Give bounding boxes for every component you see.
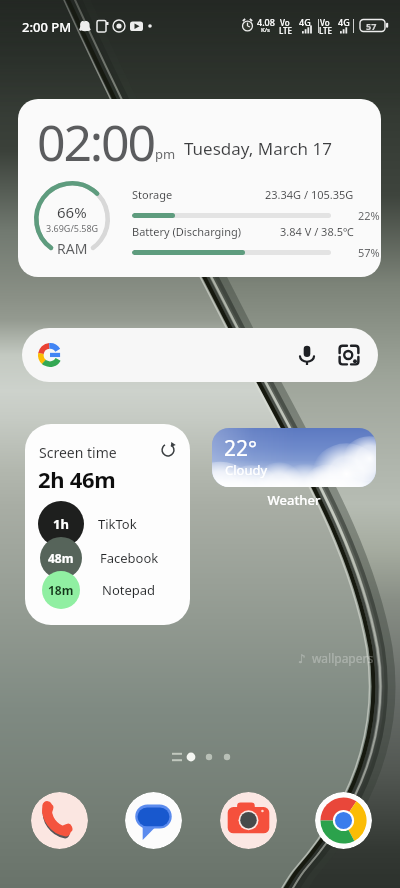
staticText: 4G <box>338 16 350 28</box>
staticText: Tuesday, March 17 <box>184 137 332 160</box>
staticText: 22° <box>224 434 258 463</box>
staticText: LTE <box>319 25 333 36</box>
button[interactable]: 1h <box>38 501 137 547</box>
staticText: 48m <box>48 550 74 566</box>
staticText: 57% <box>358 245 380 260</box>
staticText: Vo <box>280 17 290 28</box>
button[interactable]: 18m <box>42 571 156 609</box>
button[interactable]: 22° <box>212 428 376 487</box>
staticText: Battery (Discharging) <box>132 224 242 239</box>
staticText: Weather <box>212 491 376 509</box>
staticText: RAM <box>57 239 88 257</box>
button[interactable]: Phone <box>31 792 88 849</box>
staticText: K/s <box>261 26 271 34</box>
staticText: 57 <box>366 20 377 32</box>
button[interactable]: Camera <box>220 792 277 849</box>
staticText: 3.69G/5.58G <box>46 222 99 234</box>
button[interactable]: Chrome <box>315 792 372 849</box>
button[interactable]: Voice search <box>22 328 378 382</box>
button[interactable]: Refresh <box>159 441 177 459</box>
button[interactable]: 48m <box>40 537 159 579</box>
staticText: 4.08 <box>257 16 275 28</box>
staticText: pm <box>155 145 176 163</box>
staticText: ♪ wallpapers <box>298 650 374 666</box>
staticText: 22% <box>358 208 380 223</box>
staticText: 4G <box>299 16 311 28</box>
button[interactable]: Voice search <box>294 342 320 368</box>
button[interactable]: Page indicator <box>166 746 236 768</box>
staticText: Screen time <box>39 443 117 462</box>
staticText: 3.84 V / 38.5℃ <box>280 224 354 239</box>
button[interactable]: Google Lens <box>336 342 362 368</box>
button[interactable]: Messages <box>125 792 182 849</box>
button[interactable]: Screen time <box>25 424 190 625</box>
staticText: TikTok <box>98 515 137 533</box>
staticText: Facebook <box>100 549 159 567</box>
staticText: Storage <box>132 187 173 202</box>
staticText: 66% <box>57 202 87 222</box>
staticText: 02:00 <box>37 108 154 176</box>
staticText: 18m <box>48 582 74 598</box>
staticText: 2:00 PM <box>22 18 72 36</box>
staticText: Cloudy <box>225 461 268 479</box>
staticText: Notepad <box>102 581 156 599</box>
button[interactable]: 02:00 <box>18 99 381 277</box>
staticText: LTE <box>279 25 293 36</box>
staticText: 1h <box>53 515 69 533</box>
staticText: 23.34G / 105.35G <box>265 187 354 202</box>
staticText: 2h 46m <box>38 464 116 494</box>
staticText: Vo <box>320 17 330 28</box>
